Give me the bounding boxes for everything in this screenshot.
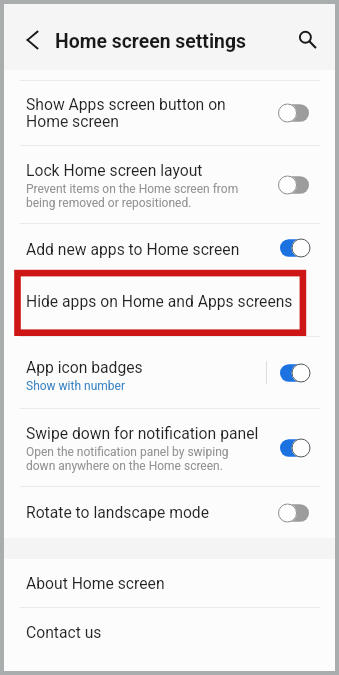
staticText: Contact us: [26, 623, 102, 641]
button[interactable]: Toggle off: [273, 499, 311, 527]
button[interactable]: Lock Home screen layout: [4, 146, 335, 223]
button[interactable]: Toggle on: [273, 434, 311, 462]
button[interactable]: About Home screen: [4, 559, 335, 607]
staticText: App icon badges: [26, 358, 143, 376]
button[interactable]: Toggle on: [273, 234, 311, 262]
button[interactable]: Toggle off: [273, 99, 311, 127]
staticText: Swipe down for notification panel: [26, 424, 259, 442]
button[interactable]: Add new apps to Home screen: [4, 224, 335, 272]
button[interactable]: Search: [289, 21, 325, 57]
button[interactable]: Hide apps on Home and Apps screens: [4, 272, 335, 336]
staticText: Rotate to landscape mode: [26, 503, 210, 521]
staticText: Home screen settings: [55, 30, 246, 53]
button[interactable]: Navigate back: [15, 22, 51, 58]
button[interactable]: Show Apps screen button on Home screen: [4, 81, 335, 145]
button[interactable]: Toggle on: [273, 359, 311, 387]
button[interactable]: Contact us: [4, 608, 335, 656]
staticText: Lock Home screen layout: [26, 161, 203, 179]
staticText: Show with number: [26, 379, 125, 393]
staticText: About Home screen: [26, 574, 165, 592]
staticText: Prevent items on the Home screen from be…: [26, 182, 239, 210]
button[interactable]: App icon badges: [4, 337, 335, 408]
staticText: Add new apps to Home screen: [26, 240, 240, 258]
staticText: Show Apps screen button on Home screen: [26, 95, 226, 131]
button[interactable]: Swipe down for notification panel: [4, 409, 335, 486]
staticText: Hide apps on Home and Apps screens: [26, 292, 293, 310]
button[interactable]: Toggle off: [273, 171, 311, 199]
staticText: Open the notification panel by swiping d…: [26, 445, 229, 473]
button[interactable]: Rotate to landscape mode: [4, 487, 335, 538]
